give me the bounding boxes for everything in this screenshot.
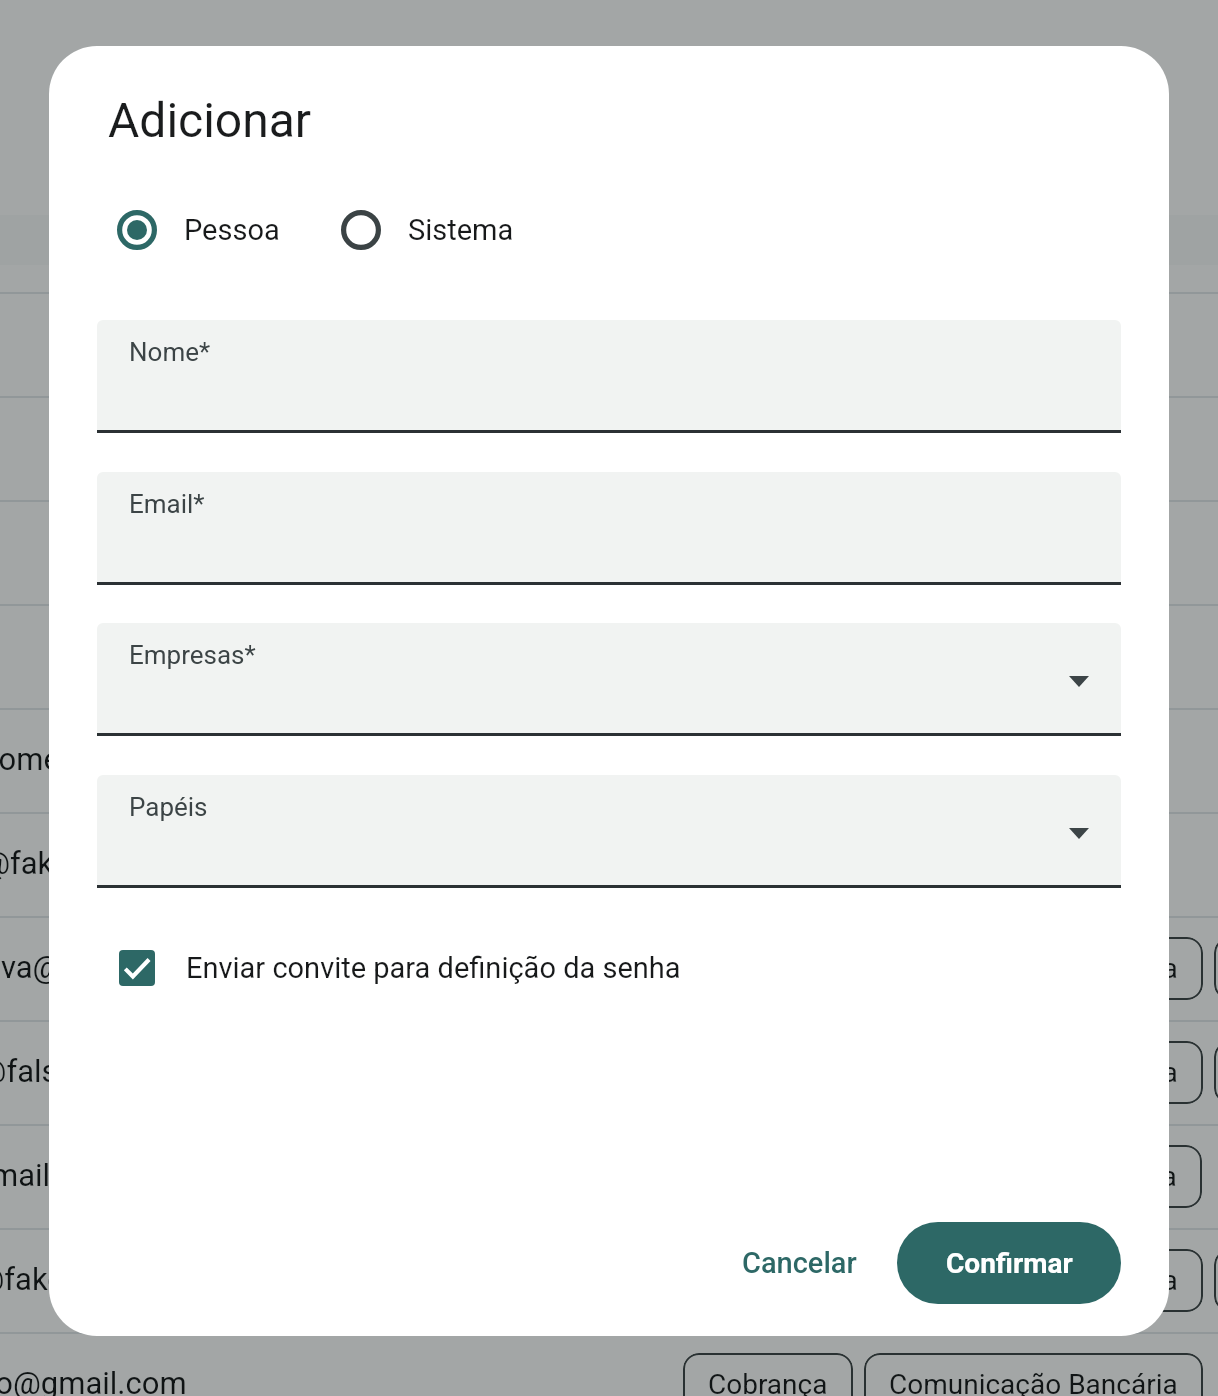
button[interactable]: Empresas*	[97, 623, 1121, 733]
staticText: Confirmar	[946, 1247, 1073, 1280]
staticText: Pessoa	[184, 213, 280, 247]
staticText: Comunicação Bancária	[889, 1264, 1178, 1297]
button[interactable]: Papéis	[97, 775, 1121, 885]
staticText: Comunicação Bancária	[888, 1160, 1177, 1193]
other: Selecionado	[117, 210, 157, 250]
button[interactable]: Financeiro	[1214, 1041, 1218, 1104]
button[interactable]: Cobrança	[683, 1353, 853, 1396]
button[interactable]: Comunicação Bancária	[864, 1353, 1203, 1396]
staticText: Comunicação Bancária	[889, 1368, 1178, 1396]
button[interactable]: Cobrança	[683, 1249, 853, 1312]
button[interactable]: Nome*	[97, 320, 1121, 430]
button[interactable]: Gestor	[1214, 1249, 1218, 1312]
other: Nao selecionado	[341, 210, 381, 250]
staticText: roberto.sobre@fakemail.com	[0, 1261, 193, 1297]
button[interactable]: Comunicação Bancária	[864, 937, 1203, 1000]
staticText: Papéis	[129, 792, 208, 822]
staticText: Sistema	[408, 213, 514, 247]
staticText: Empresas*	[129, 640, 256, 670]
staticText: contato.nome@fakemail.com	[0, 845, 198, 881]
staticText: Nome*	[129, 337, 211, 367]
button[interactable]: Enviar convite para definição da senha	[111, 940, 689, 996]
button[interactable]: Comunicação Bancária	[864, 1041, 1203, 1104]
button[interactable]: Administrador	[1214, 937, 1218, 1000]
button[interactable]: Email*	[97, 472, 1121, 582]
staticText: Cobrança	[708, 1264, 828, 1297]
button[interactable]: Nao selecionado	[341, 210, 514, 250]
staticText: carlos.silva@gmail.com	[0, 1157, 120, 1193]
button[interactable]: Comunicação Bancária	[863, 1145, 1202, 1208]
staticText: Comunicação Bancária	[889, 1056, 1178, 1089]
button[interactable]: Confirmar	[897, 1222, 1121, 1304]
staticText: Enviar convite para definição da senha	[186, 951, 681, 985]
other: Expandir	[1069, 828, 1089, 839]
staticText: joao.antonio.silva@fakemail.com	[0, 949, 249, 985]
button[interactable]: Comunicação Bancária	[864, 1249, 1203, 1312]
staticText: Adicionar	[108, 92, 312, 148]
button[interactable]: Selecionado	[117, 210, 280, 250]
other: Expandir	[1069, 676, 1089, 687]
staticText: contato.sobrenome@fakemail.com	[0, 741, 276, 777]
staticText: Email*	[129, 489, 205, 519]
staticText: Cancelar	[742, 1246, 857, 1280]
staticText: carlos.eduard@falsemail.com	[0, 1053, 203, 1089]
staticText: Cobrança	[708, 1368, 828, 1396]
staticText: Comunicação Bancária	[889, 952, 1178, 985]
button[interactable]: Cancelar	[722, 1222, 877, 1304]
staticText: nome.financeiro@gmail.com	[0, 1365, 187, 1396]
